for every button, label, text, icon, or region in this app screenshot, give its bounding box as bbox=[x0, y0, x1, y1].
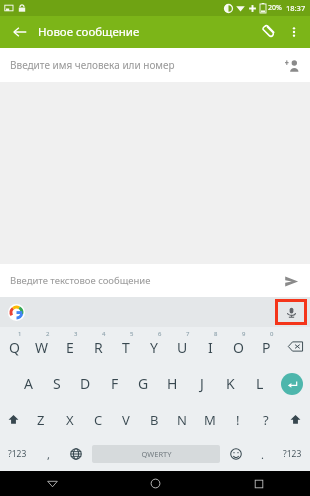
button[interactable]: X bbox=[55, 402, 84, 437]
staticText: 4 bbox=[102, 330, 106, 338]
staticText: U bbox=[177, 338, 188, 357]
button[interactable]: L bbox=[245, 365, 274, 402]
button[interactable]: E bbox=[56, 327, 84, 365]
button[interactable]: ! bbox=[224, 402, 252, 437]
staticText: M bbox=[204, 411, 216, 429]
staticText: Z bbox=[37, 411, 45, 429]
staticText: E bbox=[66, 338, 74, 357]
staticText: Новое сообщение bbox=[38, 24, 140, 40]
staticText: R bbox=[94, 338, 103, 357]
button[interactable]: Удалить bbox=[280, 327, 310, 365]
button[interactable]: P bbox=[252, 327, 280, 365]
button[interactable]: ?123 bbox=[0, 437, 34, 471]
button[interactable]: V bbox=[112, 402, 140, 437]
button[interactable]: Введите имя человека или номер bbox=[0, 48, 310, 82]
button[interactable]: K bbox=[216, 365, 245, 402]
button[interactable]: Сменить язык bbox=[62, 437, 90, 471]
button[interactable]: Z bbox=[26, 402, 55, 437]
staticText: Q bbox=[9, 338, 20, 357]
staticText: W bbox=[35, 338, 49, 357]
button[interactable]: U bbox=[168, 327, 196, 365]
staticText: 7 bbox=[186, 330, 190, 338]
button[interactable]: O bbox=[224, 327, 252, 365]
staticText: 1 bbox=[18, 330, 22, 338]
staticText: A bbox=[24, 374, 33, 393]
button[interactable]: Q bbox=[0, 327, 28, 365]
button[interactable]: N bbox=[168, 402, 196, 437]
staticText: T bbox=[122, 338, 130, 357]
staticText: C bbox=[94, 411, 103, 429]
button[interactable]: M bbox=[196, 402, 224, 437]
button[interactable]: T bbox=[112, 327, 140, 365]
staticText: H bbox=[167, 374, 178, 393]
button[interactable]: Назад bbox=[8, 20, 32, 44]
button[interactable]: Голосовой ввод bbox=[275, 299, 307, 325]
button[interactable]: Введите текстовое сообщение bbox=[0, 264, 310, 297]
staticText: ?123 bbox=[283, 448, 302, 460]
button[interactable]: Верхний регистр bbox=[0, 402, 26, 437]
staticText: V bbox=[122, 411, 130, 429]
staticText: S bbox=[53, 374, 61, 393]
staticText: , bbox=[47, 447, 50, 462]
staticText: I bbox=[208, 338, 213, 357]
staticText: ? bbox=[263, 411, 269, 429]
staticText: G bbox=[138, 374, 149, 393]
button[interactable]: W bbox=[28, 327, 56, 365]
staticText: 0 bbox=[270, 330, 274, 338]
staticText: O bbox=[233, 338, 244, 357]
staticText: ?123 bbox=[8, 448, 27, 460]
button[interactable]: Отправить bbox=[278, 268, 304, 294]
button[interactable]: , bbox=[34, 437, 62, 471]
button[interactable]: G bbox=[129, 365, 158, 402]
button[interactable]: B bbox=[140, 402, 168, 437]
button[interactable]: Главный экран bbox=[104, 471, 207, 496]
staticText: J bbox=[200, 374, 204, 393]
staticText: Y bbox=[150, 338, 158, 357]
staticText: 18:37 bbox=[286, 3, 306, 13]
staticText: X bbox=[66, 411, 74, 429]
staticText: Введите имя человека или номер bbox=[10, 58, 175, 72]
button[interactable]: D bbox=[71, 365, 100, 402]
button[interactable]: Верхний регистр bbox=[280, 402, 310, 437]
button[interactable]: Недавние приложения bbox=[207, 471, 310, 496]
staticText: B bbox=[150, 411, 159, 429]
button[interactable]: Ещё bbox=[282, 20, 306, 44]
button[interactable]: F bbox=[100, 365, 129, 402]
staticText: 20% bbox=[268, 3, 282, 13]
staticText: 5 bbox=[130, 330, 134, 338]
staticText: Введите текстовое сообщение bbox=[10, 274, 151, 287]
button[interactable]: Назад bbox=[0, 471, 104, 496]
button[interactable]: Добавить получателя bbox=[280, 53, 304, 77]
staticText: L bbox=[256, 374, 264, 393]
button[interactable]: S bbox=[42, 365, 71, 402]
staticText: 8 bbox=[214, 330, 218, 338]
staticText: D bbox=[80, 374, 91, 393]
button[interactable]: Эмодзи bbox=[222, 437, 250, 471]
button[interactable]: J bbox=[187, 365, 216, 402]
button[interactable]: Google bbox=[6, 302, 26, 322]
button[interactable]: Ввод bbox=[274, 365, 310, 402]
staticText: F bbox=[111, 374, 119, 393]
staticText: . bbox=[261, 447, 264, 462]
staticText: QWERTY bbox=[141, 449, 172, 459]
button[interactable]: . bbox=[250, 437, 274, 471]
button[interactable]: Прикрепить bbox=[256, 19, 282, 45]
button[interactable]: A bbox=[14, 365, 42, 402]
button[interactable]: QWERTY bbox=[92, 445, 220, 463]
button[interactable]: R bbox=[84, 327, 112, 365]
button[interactable]: Y bbox=[140, 327, 168, 365]
button[interactable]: ? bbox=[252, 402, 280, 437]
staticText: K bbox=[226, 374, 235, 393]
staticText: P bbox=[262, 338, 271, 357]
staticText: N bbox=[177, 411, 187, 429]
button[interactable]: C bbox=[84, 402, 112, 437]
staticText: 9 bbox=[242, 330, 246, 338]
staticText: ! bbox=[236, 411, 240, 429]
button[interactable]: H bbox=[158, 365, 187, 402]
staticText: 6 bbox=[158, 330, 162, 338]
button[interactable]: ?123 bbox=[274, 437, 310, 471]
staticText: 3 bbox=[74, 330, 78, 338]
staticText: 2 bbox=[46, 330, 50, 338]
button[interactable]: I bbox=[196, 327, 224, 365]
